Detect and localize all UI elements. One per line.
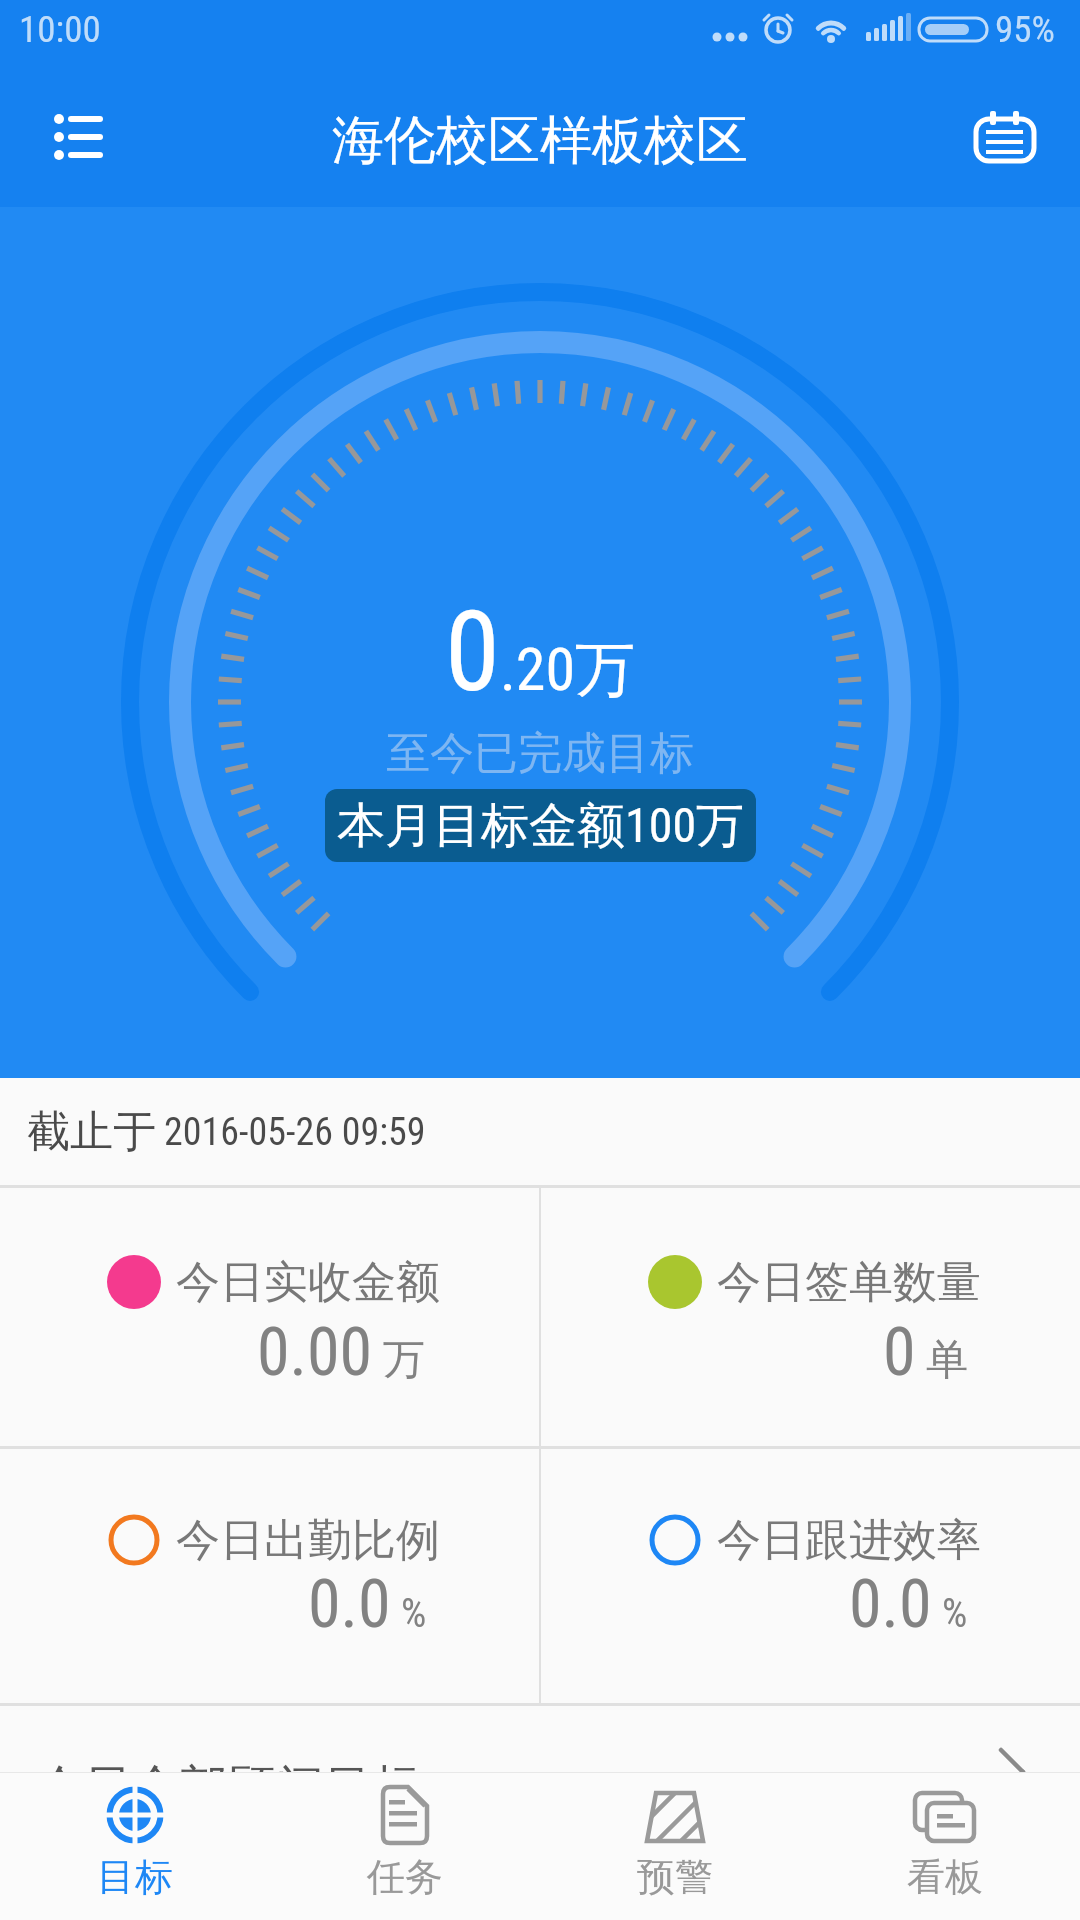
staticText: 95% [995,8,1055,51]
staticText: 2016-05-26 09:59 [164,1110,426,1155]
button[interactable] [957,91,1053,181]
staticText: 单 [926,1334,968,1387]
staticText: 今日全部顾问目标 [36,1758,420,1772]
button[interactable]: 今日出勤比例 [0,1449,539,1703]
button[interactable]: 今日实收金额 [0,1188,539,1446]
staticText: 今日跟进效率 [717,1513,981,1568]
staticText: 今日签单数量 [717,1255,981,1310]
button[interactable]: 目标 [0,1773,270,1920]
staticText: 0 [445,587,500,717]
staticText: 0.0 [308,1566,391,1643]
staticText: 万 [383,1334,425,1387]
staticText: 截止于 [27,1105,156,1159]
staticText: 0.00 [257,1314,373,1391]
staticText: % [942,1590,968,1637]
button[interactable]: 任务 [270,1773,540,1920]
staticText: 10:00 [19,8,101,51]
staticText: 目标 [97,1853,173,1901]
button[interactable]: 预警 [540,1773,810,1920]
staticText: 看板 [907,1853,983,1901]
staticText: 0.0 [849,1566,932,1643]
staticText: % [401,1590,427,1637]
staticText: 今日出勤比例 [176,1513,440,1568]
staticText: 海伦校区样板校区 [332,108,748,174]
staticText: 预警 [637,1853,713,1901]
staticText: 任务 [367,1853,443,1901]
staticText: .20万 [500,632,636,708]
staticText: 今日实收金额 [176,1255,440,1310]
button[interactable]: 今日签单数量 [541,1188,1080,1446]
staticText: 0 [883,1314,916,1391]
button[interactable]: 看板 [810,1773,1080,1920]
button[interactable]: 今日跟进效率 [541,1449,1080,1703]
button[interactable]: 今日全部顾问目标 [0,1706,1080,1772]
button[interactable] [34,94,124,180]
staticText: 本月目标金额100万 [337,796,745,856]
staticText: 至今已完成目标 [386,726,694,781]
